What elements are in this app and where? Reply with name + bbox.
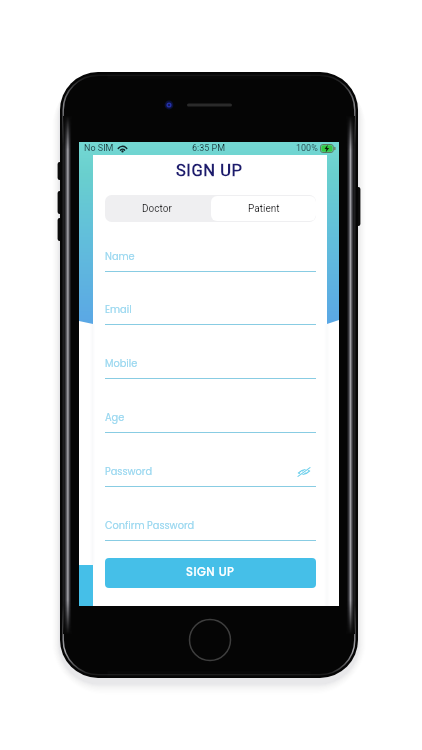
staticText: Password: [105, 465, 153, 479]
staticText: Name: [105, 250, 135, 264]
button[interactable]: Mobile: [105, 357, 316, 379]
button[interactable]: Age: [105, 411, 316, 433]
staticText: Mobile: [105, 357, 138, 371]
staticText: Age: [105, 411, 125, 425]
staticText: SIGN UP: [176, 161, 243, 180]
button[interactable]: Name: [105, 250, 316, 272]
staticText: Email: [105, 303, 132, 317]
staticText: No SIM: [84, 143, 114, 154]
button[interactable]: Doctor: [105, 195, 211, 222]
button[interactable]: Password: [105, 465, 316, 487]
button[interactable]: Email: [105, 303, 316, 325]
staticText: Doctor: [142, 203, 172, 215]
staticText: Patient: [248, 203, 280, 215]
staticText: SIGN UP: [186, 564, 235, 580]
staticText: 100%: [296, 143, 318, 154]
button[interactable]: SIGN UP: [105, 558, 316, 588]
other: Show password: [298, 467, 310, 477]
button[interactable]: Patient: [211, 196, 316, 221]
button[interactable]: Confirm Password: [105, 519, 316, 541]
staticText: 6:35 PM: [192, 143, 226, 154]
staticText: Confirm Password: [105, 519, 195, 533]
